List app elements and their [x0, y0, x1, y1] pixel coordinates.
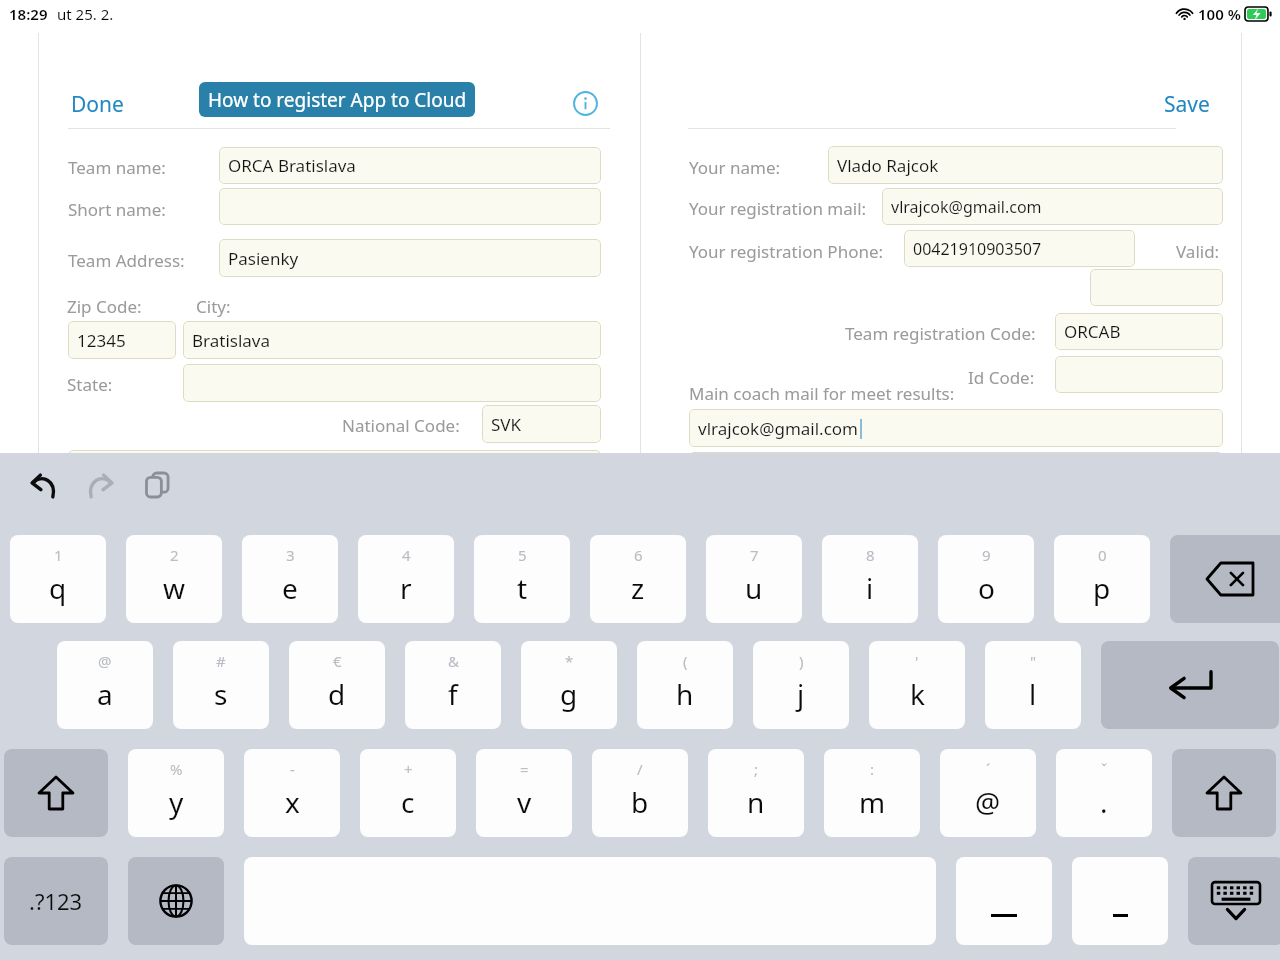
button[interactable]: Done	[67, 88, 128, 121]
staticText: "	[1030, 651, 1037, 671]
button[interactable]: &	[405, 641, 501, 729]
staticText: Zip Code:	[67, 295, 142, 318]
button[interactable]	[1090, 269, 1223, 306]
staticText: :	[870, 759, 875, 779]
button[interactable]: .?123	[4, 857, 108, 945]
button[interactable]: (	[637, 641, 733, 729]
button[interactable]: @	[57, 641, 153, 729]
staticText: l	[1029, 675, 1037, 713]
staticText: v	[517, 783, 532, 821]
staticText: Valid:	[1176, 240, 1220, 263]
staticText: ;	[754, 759, 759, 779]
staticText: n	[747, 783, 765, 821]
staticText: +	[404, 759, 413, 779]
button[interactable]: ORCAB	[1055, 313, 1223, 350]
button[interactable]: =	[476, 749, 572, 837]
button[interactable]: Backspace	[1170, 535, 1280, 623]
staticText: ORCAB	[1064, 320, 1121, 343]
button[interactable]: 8	[822, 535, 918, 623]
button[interactable]	[1055, 356, 1223, 393]
button[interactable]: Return	[1101, 641, 1279, 729]
button[interactable]: Change keyboard	[128, 857, 224, 945]
button[interactable]: ˇ	[1056, 749, 1152, 837]
staticText: €	[333, 651, 342, 671]
staticText: b	[631, 783, 649, 821]
staticText: Team Address:	[68, 249, 185, 272]
button[interactable]: 6	[590, 535, 686, 623]
button[interactable]: *	[521, 641, 617, 729]
staticText: =	[520, 759, 529, 779]
button[interactable]: Paste	[138, 465, 178, 505]
button[interactable]: vlrajcok@gmail.com	[882, 188, 1223, 225]
button[interactable]	[219, 188, 601, 225]
button[interactable]: 0	[1054, 535, 1150, 623]
button[interactable]: Slovakia	[68, 450, 601, 488]
staticText: .	[1100, 783, 1108, 821]
button[interactable]: ;	[708, 749, 804, 837]
button[interactable]: 9	[938, 535, 1034, 623]
button[interactable]: +	[360, 749, 456, 837]
button[interactable]: #	[173, 641, 269, 729]
button[interactable]: 3	[242, 535, 338, 623]
staticText: 8	[866, 545, 875, 565]
staticText: t	[517, 569, 528, 607]
button[interactable]: Pasienky	[219, 239, 601, 277]
button[interactable]	[183, 364, 601, 402]
button[interactable]: 5	[474, 535, 570, 623]
staticText: Vlado Rajcok	[837, 154, 939, 177]
staticText: Save	[1164, 90, 1210, 119]
button[interactable]: Redo	[80, 465, 120, 505]
staticText: w	[163, 569, 186, 607]
button[interactable]: /	[592, 749, 688, 837]
staticText: c	[401, 783, 415, 821]
button[interactable]: Shift	[4, 749, 108, 837]
staticText: Team registration Code:	[845, 322, 1036, 345]
staticText: vlrajcok@gmail.com	[891, 196, 1042, 218]
button[interactable]: :	[824, 749, 920, 837]
button[interactable]: Information	[573, 91, 598, 116]
staticText: m	[859, 783, 886, 821]
button[interactable]: ´	[940, 749, 1036, 837]
button[interactable]: Save	[1160, 88, 1214, 121]
button[interactable]: 00421910903507	[904, 230, 1135, 267]
staticText: Team name:	[68, 156, 166, 179]
staticText: s	[214, 675, 228, 713]
button[interactable]: 1	[10, 535, 106, 623]
button[interactable]: 2	[126, 535, 222, 623]
button[interactable]: Hide keyboard	[1188, 857, 1280, 945]
button[interactable]: SLOVENSKÁ PLAVECKÁ FEDERÁCIA	[689, 452, 1223, 490]
button[interactable]: Bratislava	[183, 321, 601, 359]
button[interactable]: ORCA Bratislava	[219, 147, 601, 184]
button[interactable]: How to register App to Cloud	[199, 82, 475, 117]
staticText: i	[866, 569, 874, 607]
staticText: State:	[67, 373, 113, 396]
staticText: g	[560, 675, 578, 713]
button[interactable]: SVK	[482, 405, 601, 443]
button[interactable]: Hyphen	[1072, 857, 1168, 945]
staticText: j	[797, 675, 805, 713]
button[interactable]: 12345	[68, 321, 176, 359]
button[interactable]: vlrajcok@gmail.com	[689, 409, 1223, 447]
staticText: 4	[402, 545, 411, 565]
button[interactable]: €	[289, 641, 385, 729]
button[interactable]: Em dash	[956, 857, 1052, 945]
staticText: &	[448, 651, 459, 671]
button[interactable]: 4	[358, 535, 454, 623]
staticText: 0	[1098, 545, 1107, 565]
button[interactable]: )	[753, 641, 849, 729]
button[interactable]: '	[869, 641, 965, 729]
staticText: .?123	[29, 886, 83, 916]
button[interactable]: Undo	[24, 465, 64, 505]
button[interactable]: Shift	[1172, 749, 1276, 837]
staticText: 7	[750, 545, 759, 565]
staticText: ´	[986, 759, 991, 779]
button[interactable]: "	[985, 641, 1081, 729]
button[interactable]: %	[128, 749, 224, 837]
button[interactable]: 7	[706, 535, 802, 623]
staticText: ut 25. 2.	[57, 4, 114, 24]
staticText: @	[98, 651, 112, 671]
button[interactable]: -	[244, 749, 340, 837]
button[interactable]: Vlado Rajcok	[828, 146, 1223, 184]
